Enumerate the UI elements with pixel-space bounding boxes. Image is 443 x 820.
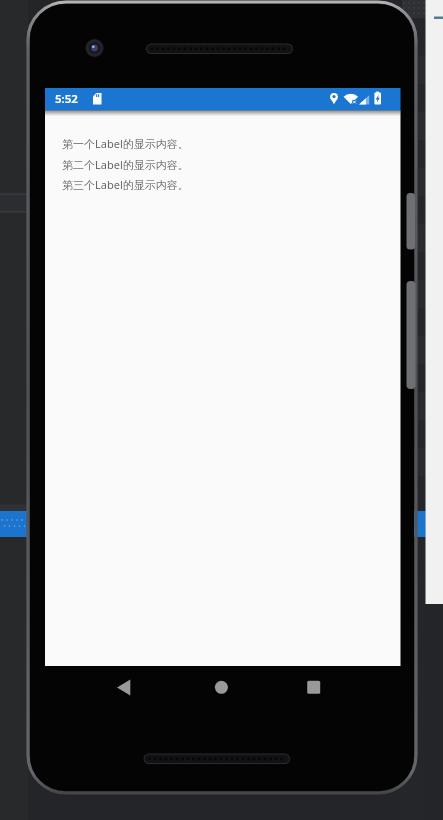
staticText: 第一个Label的显示内容。 bbox=[62, 136, 189, 151]
staticText: 第三个Label的显示内容。 bbox=[62, 177, 189, 192]
staticText: 5:52 bbox=[55, 91, 78, 107]
staticText: 第二个Label的显示内容。 bbox=[62, 157, 189, 172]
